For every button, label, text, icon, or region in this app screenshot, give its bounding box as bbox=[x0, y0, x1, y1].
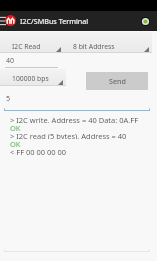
button[interactable]: Connection status bbox=[137, 11, 153, 31]
button[interactable]: Send bbox=[86, 72, 148, 90]
staticText: < FF 00 00 00 00 bbox=[10, 147, 67, 155]
button[interactable]: I2C Read bbox=[0, 32, 64, 53]
button[interactable]: Open navigation drawer bbox=[0, 11, 6, 31]
staticText: 5 bbox=[6, 93, 11, 103]
staticText: 40 bbox=[6, 56, 15, 66]
staticText: OK bbox=[10, 123, 21, 131]
staticText: I2C/SMBus Terminal bbox=[20, 16, 89, 26]
button[interactable]: 8 bit Address bbox=[64, 32, 152, 53]
staticText: 8 bit Address bbox=[73, 42, 115, 51]
staticText: OK bbox=[10, 139, 21, 147]
staticText: Send bbox=[109, 76, 126, 86]
staticText: > I2C write, Address = 40 Data: 0A,FF bbox=[10, 115, 139, 123]
staticText: > I2C read (5 bytes), Address = 40 bbox=[10, 131, 127, 139]
button[interactable]: 100000 bps bbox=[0, 69, 66, 86]
staticText: I2C Read bbox=[12, 42, 41, 51]
staticText: 100000 bps bbox=[12, 74, 49, 83]
